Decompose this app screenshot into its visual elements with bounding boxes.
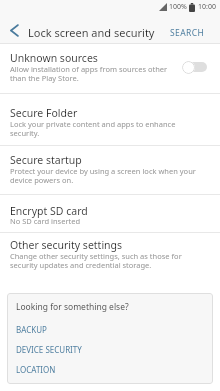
staticText: Allow installation of apps from sources …: [10, 64, 168, 83]
staticText: Change other security settings, such as …: [10, 251, 182, 270]
staticText: Unknown sources: [10, 51, 98, 65]
staticText: DEVICE SECURITY: [16, 344, 82, 355]
button[interactable]: BACKUP: [7, 320, 213, 339]
staticText: No SD card inserted: [10, 216, 81, 226]
staticText: 10:00: [198, 2, 216, 12]
button[interactable]: [0, 146, 220, 194]
button[interactable]: SEARCH: [164, 16, 220, 43]
button[interactable]: LOCATION: [7, 360, 213, 379]
button[interactable]: DEVICE SECURITY: [7, 340, 213, 359]
button[interactable]: [0, 195, 220, 232]
staticText: Lock your private content and apps to en…: [10, 119, 176, 138]
button[interactable]: [0, 233, 220, 273]
button[interactable]: [0, 44, 220, 93]
staticText: Lock screen and security: [28, 25, 155, 40]
staticText: Other security settings: [10, 238, 123, 252]
button[interactable]: [0, 94, 220, 146]
staticText: SEARCH: [170, 27, 205, 39]
staticText: Looking for something else?: [16, 301, 129, 313]
button[interactable]: [182, 58, 210, 76]
staticText: Encrypt SD card: [10, 204, 88, 218]
staticText: Protect your device by using a screen lo…: [10, 166, 196, 185]
button[interactable]: [2, 18, 26, 42]
staticText: Secure Folder: [10, 106, 78, 120]
staticText: BACKUP: [16, 324, 47, 335]
staticText: Secure startup: [10, 153, 82, 167]
staticText: 100%: [169, 2, 187, 12]
staticText: LOCATION: [16, 364, 56, 375]
